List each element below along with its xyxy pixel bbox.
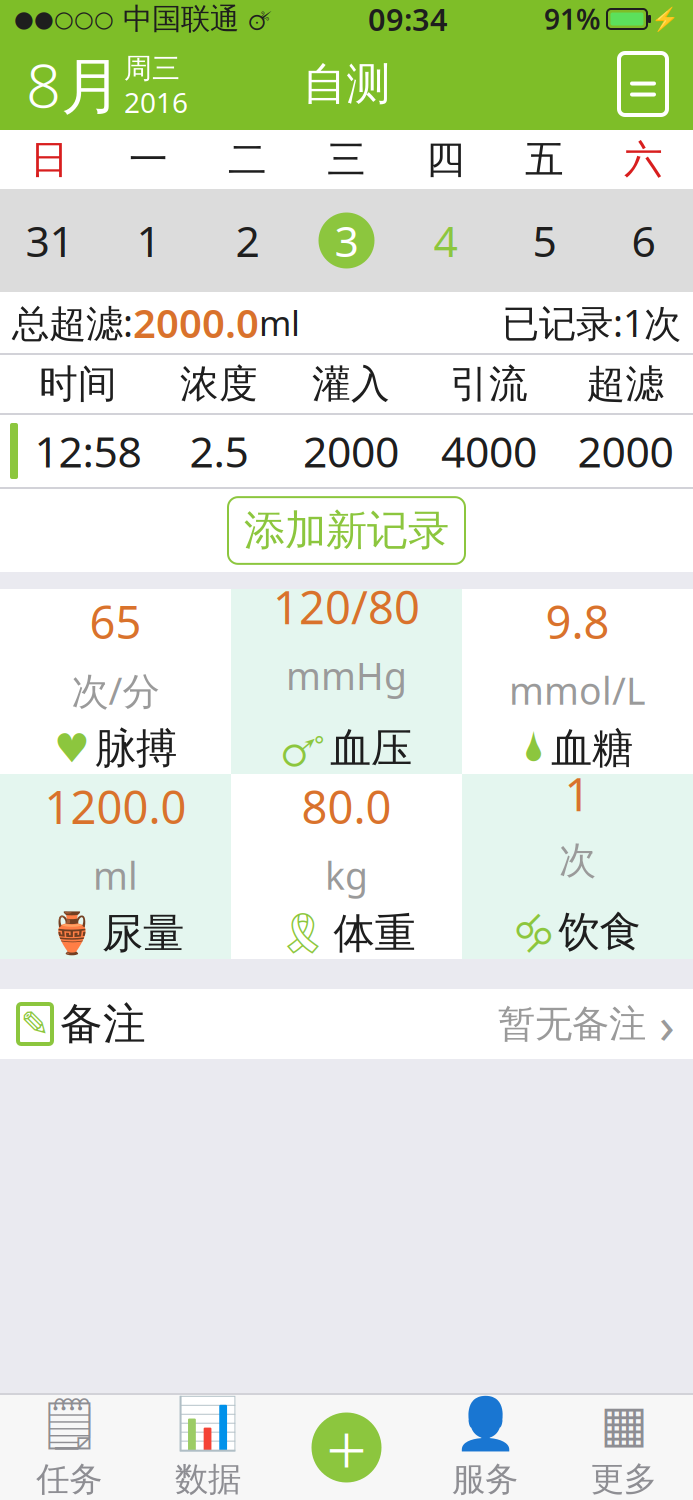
staticText: 六 [624, 136, 663, 183]
staticText: 任务 [36, 1459, 102, 1500]
staticText: 一 [129, 136, 168, 183]
staticText: 2 [235, 212, 259, 269]
staticText: ♥ [54, 726, 90, 771]
button[interactable]: 6 [594, 189, 693, 292]
staticText: 91% [544, 0, 601, 38]
button[interactable]: Add [277, 1395, 416, 1500]
staticText: 80.0 [301, 776, 391, 836]
staticText: 3 [334, 212, 358, 269]
staticText: 🝰 [514, 892, 553, 972]
button[interactable]: 31 [0, 189, 99, 292]
staticText: 尿量 [102, 908, 184, 959]
staticText: 🗒 [37, 1395, 101, 1453]
button[interactable]: 5 [495, 189, 594, 292]
staticText: 9.8 [545, 591, 609, 651]
staticText: 体重 [333, 908, 415, 959]
staticText: 超滤 [586, 360, 664, 408]
button[interactable]: 120/80 [231, 589, 462, 774]
staticText: ✎ [20, 1004, 49, 1044]
staticText: 血压 [330, 723, 412, 774]
staticText: 4 [433, 212, 457, 269]
staticText: 65 [89, 591, 141, 651]
staticText: 中国联通 [114, 1, 248, 37]
staticText: kg [325, 850, 368, 900]
button[interactable]: 1200.0 [0, 774, 231, 959]
button[interactable]: 12:58 [0, 415, 693, 487]
staticText: 四 [426, 136, 465, 183]
staticText: 暂无备注 [498, 1001, 646, 1047]
staticText: 周三 [124, 51, 180, 85]
staticText: 服务 [452, 1459, 518, 1500]
staticText: 次 [559, 838, 596, 884]
button[interactable]: 📊 [139, 1395, 277, 1500]
staticText: 数据 [175, 1459, 241, 1500]
staticText: 2000.0 [133, 296, 259, 349]
staticText: 31 [25, 212, 73, 269]
button[interactable]: 9.8 [462, 589, 693, 774]
button[interactable]: 2 [198, 189, 297, 292]
staticText: 备注 [60, 998, 146, 1050]
staticText: 12:58 [34, 423, 141, 479]
staticText: 🏺 [47, 910, 97, 956]
staticText: ▦ [600, 1395, 648, 1453]
staticText: 1200.0 [44, 776, 186, 836]
staticText: 120/80 [273, 577, 420, 637]
staticText: ●●○○○ [14, 6, 114, 32]
staticText: 饮食 [558, 906, 640, 957]
staticText: 5 [532, 212, 556, 269]
staticText: 五 [525, 136, 564, 183]
button[interactable]: 8月 [0, 38, 196, 130]
button[interactable]: 1 [462, 774, 693, 959]
staticText: 自测 [302, 57, 390, 111]
staticText: mmHg [286, 651, 407, 700]
staticText: 脉搏 [95, 723, 177, 774]
staticText: 灌入 [312, 360, 390, 408]
staticText: 6 [631, 212, 655, 269]
staticText: 8月 [26, 43, 122, 125]
staticText: 更多 [591, 1459, 657, 1500]
button[interactable]: 1 [99, 189, 198, 292]
staticText: › [646, 990, 675, 1058]
staticText: mmol/L [509, 665, 646, 715]
staticText: ⚡ [651, 6, 679, 32]
staticText: 🎗 [277, 910, 328, 956]
staticText: 🜚 [248, 0, 272, 43]
staticText: 已记录:1次 [502, 298, 681, 347]
button[interactable]: 3 [297, 189, 396, 292]
staticText: 🌢 [522, 729, 546, 768]
staticText: 09:34 [368, 0, 448, 39]
staticText: 三 [327, 136, 366, 183]
staticText: 引流 [450, 360, 528, 408]
staticText: + [326, 1400, 367, 1495]
staticText: 添加新记录 [244, 505, 449, 556]
staticText: 日 [30, 136, 69, 183]
button[interactable]: Records [619, 53, 693, 115]
button[interactable]: ✎ [0, 989, 693, 1059]
button[interactable]: 🗒 [0, 1395, 139, 1500]
staticText: 血糖 [551, 723, 633, 774]
staticText: ml [93, 850, 138, 900]
staticText: 1 [136, 212, 160, 269]
staticText: 2.5 [189, 423, 248, 479]
staticText: 2000 [303, 423, 399, 479]
staticText: 二 [228, 136, 267, 183]
staticText: 2000 [577, 423, 673, 479]
staticText: 时间 [39, 360, 117, 408]
staticText: 总超滤: [12, 298, 133, 347]
staticText: ml [259, 299, 300, 345]
staticText: 1 [564, 763, 590, 824]
staticText: 4000 [441, 423, 537, 479]
button[interactable]: 添加新记录 [228, 497, 465, 564]
staticText: 次/分 [71, 665, 159, 715]
staticText: 浓度 [180, 360, 258, 408]
button[interactable]: ▦ [554, 1395, 693, 1500]
button[interactable]: 80.0 [231, 774, 462, 959]
staticText: 👤 [454, 1395, 517, 1453]
button[interactable]: 👤 [416, 1395, 554, 1500]
staticText: 2016 [124, 83, 188, 121]
button[interactable]: 4 [396, 189, 495, 292]
staticText: 🜜 [281, 708, 325, 788]
staticText: 📊 [176, 1395, 239, 1453]
button[interactable]: 65 [0, 589, 231, 774]
